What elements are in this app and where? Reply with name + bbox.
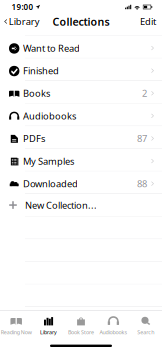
button[interactable]: Library: [32, 311, 65, 337]
staticText: Collections: [52, 14, 109, 29]
staticText: Downloaded: [23, 177, 78, 190]
staticText: My Samples: [23, 155, 74, 167]
staticText: 88: [137, 177, 147, 190]
button[interactable]: Book Store: [65, 311, 97, 337]
staticText: 19:00: [11, 2, 33, 12]
button[interactable]: Edit: [135, 14, 162, 29]
staticText: Edit: [140, 15, 156, 28]
staticText: PDFs: [23, 132, 45, 145]
button[interactable]: PDFs: [0, 126, 162, 148]
staticText: Books: [23, 87, 50, 99]
staticText: Audiobooks: [99, 329, 127, 336]
staticText: Finished: [23, 64, 59, 77]
button[interactable]: Audiobooks: [97, 311, 130, 337]
staticText: Audiobooks: [23, 110, 76, 122]
button[interactable]: Search: [130, 311, 162, 337]
staticText: Want to Read: [23, 42, 80, 54]
button[interactable]: Finished: [0, 58, 162, 80]
staticText: Library: [40, 329, 57, 336]
button[interactable]: Reading Now: [0, 311, 32, 337]
button[interactable]: Audiobooks: [0, 104, 162, 126]
staticText: Book Store: [68, 329, 94, 336]
staticText: 2: [142, 87, 147, 99]
staticText: Search: [137, 329, 154, 336]
staticText: New Collection...: [25, 199, 97, 211]
button[interactable]: New Collection...: [0, 194, 162, 216]
button[interactable]: My Samples: [0, 149, 162, 171]
staticText: 87: [137, 132, 147, 145]
button[interactable]: Downloaded: [0, 171, 162, 193]
button[interactable]: Want to Read: [0, 36, 162, 58]
staticText: Reading Now: [1, 329, 32, 336]
button[interactable]: Books: [0, 81, 162, 103]
staticText: Library: [9, 15, 40, 28]
button[interactable]: Library: [0, 14, 44, 29]
